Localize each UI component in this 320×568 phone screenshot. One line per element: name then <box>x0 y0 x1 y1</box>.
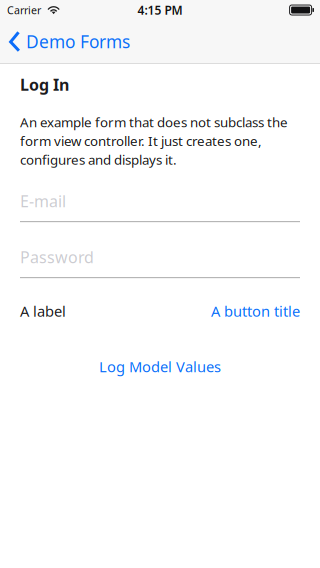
staticText: E-mail <box>20 190 66 212</box>
button[interactable]: A button title <box>211 301 300 321</box>
staticText: A label <box>20 301 66 321</box>
staticText: Log In <box>20 74 69 95</box>
staticText: Carrier <box>7 3 41 17</box>
staticText: An example form that does not subclass t… <box>20 113 288 168</box>
button[interactable]: Log Model Values <box>20 357 300 376</box>
staticText: Password <box>20 246 94 268</box>
button[interactable]: Demo Forms <box>0 20 138 63</box>
staticText: A button title <box>211 301 300 321</box>
button[interactable]: Password <box>20 246 300 278</box>
button[interactable]: E-mail <box>20 190 300 222</box>
staticText: Demo Forms <box>26 30 130 53</box>
staticText: 4:15 PM <box>137 2 182 18</box>
staticText: Log Model Values <box>99 357 221 376</box>
